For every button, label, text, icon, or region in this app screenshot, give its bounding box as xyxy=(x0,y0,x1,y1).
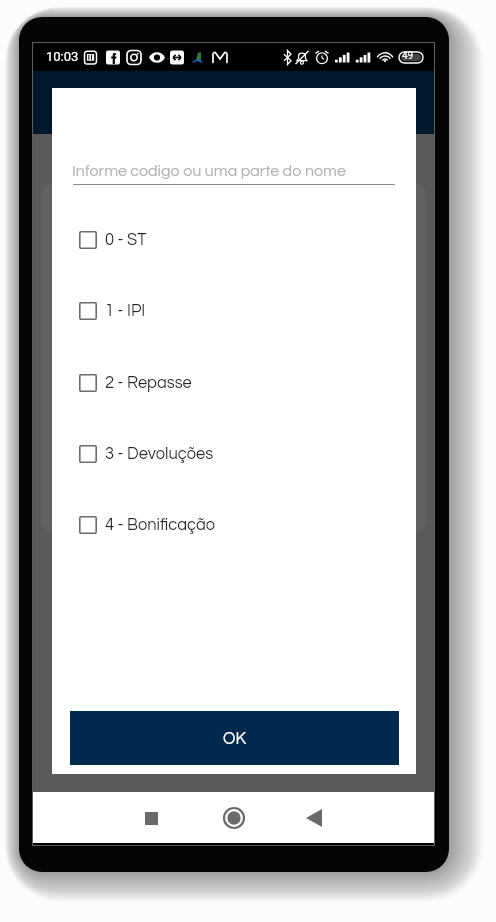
staticText: 0 - ST xyxy=(105,231,147,248)
button[interactable]: 3 - Devoluções xyxy=(52,433,416,475)
button[interactable]: 2 - Repasse xyxy=(52,362,416,404)
button[interactable]: 0 - ST xyxy=(52,219,416,261)
staticText: 2 - Repasse xyxy=(105,374,192,391)
staticText: 49 xyxy=(402,50,414,62)
button[interactable]: Recent apps xyxy=(131,798,171,838)
button[interactable]: Home xyxy=(214,798,254,838)
button[interactable]: 1 - IPI xyxy=(52,290,416,332)
staticText: 10:03 xyxy=(46,49,79,64)
staticText: OK xyxy=(223,730,246,747)
staticText: Informe codigo ou uma parte do nome xyxy=(72,163,346,179)
button[interactable]: Back xyxy=(294,798,334,838)
staticText: 4 - Bonificação xyxy=(105,516,216,533)
staticText: 1 - IPI xyxy=(105,302,146,319)
button[interactable]: 4 - Bonificação xyxy=(52,504,416,546)
button[interactable]: OK xyxy=(70,711,399,765)
staticText: 3 - Devoluções xyxy=(105,445,214,462)
